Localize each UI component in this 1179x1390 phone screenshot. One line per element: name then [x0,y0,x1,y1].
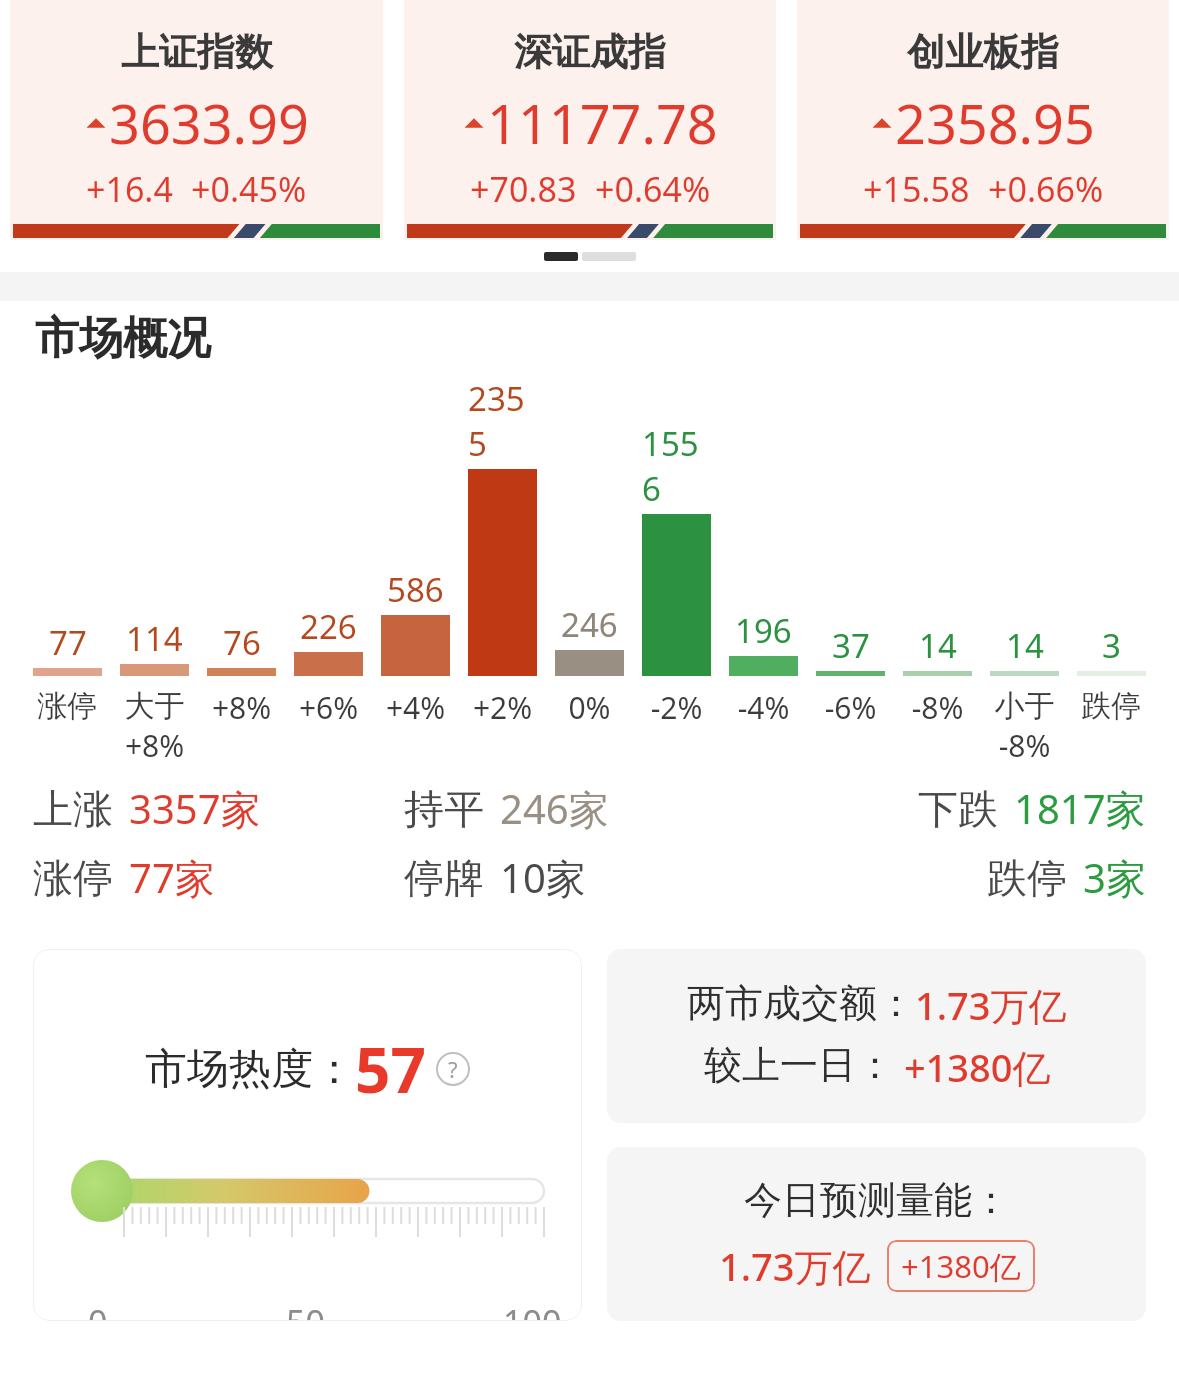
button[interactable]: 3 [1077,376,1146,781]
staticText: +4% [381,687,450,728]
button[interactable]: 上证指数 [10,0,383,240]
button[interactable]: 14 [903,376,972,781]
staticText: 2358.95 [895,86,1095,160]
staticText: +70.83 [470,166,577,212]
staticText: 大于 [120,687,189,725]
staticText: 上证指数 [121,28,273,76]
staticText: 100 [503,1299,562,1321]
staticText: 1556 [642,421,711,511]
button[interactable]: 14 [990,376,1059,781]
staticText: +15.58 [863,166,970,212]
staticText: +8% [120,725,189,766]
staticText: 小于 [990,687,1059,725]
staticText: ? [448,1054,458,1084]
staticText: 涨停 [33,853,113,903]
staticText: 586 [387,567,444,612]
staticText: +0.45% [191,166,307,212]
staticText: 246 [561,602,618,647]
staticText: 停牌 [404,853,484,903]
staticText: 2355 [468,376,537,466]
button[interactable]: 1556 [642,376,711,781]
staticText: +6% [294,687,363,728]
button[interactable]: 两市成交额： [607,949,1146,1123]
staticText: -8% [903,687,972,728]
staticText: 76 [223,620,261,665]
staticText: +16.4 [86,166,173,212]
staticText: -4% [729,687,798,728]
staticText: 3家 [1083,850,1146,905]
button[interactable]: 77 [33,376,102,781]
button[interactable]: 今日预测量能： [607,1147,1146,1321]
button[interactable]: 586 [381,376,450,781]
staticText: -8% [990,725,1059,766]
staticText: 市场热度： [145,1043,355,1096]
staticText: 持平 [404,784,484,834]
staticText: 246家 [500,781,609,836]
staticText: 50 [286,1299,325,1321]
staticText: +0.66% [988,166,1104,212]
staticText: +2% [468,687,537,728]
staticText: 57 [355,1027,426,1111]
staticText: 77 [49,620,87,665]
staticText: 11177.78 [487,86,718,160]
staticText: 市场概况 [35,311,211,366]
staticText: 两市成交额： [687,979,915,1027]
staticText: 14 [1006,623,1044,668]
button[interactable]: 市场热度： [33,949,582,1321]
staticText: 今日预测量能： [744,1176,1010,1224]
staticText: 3 [1102,623,1121,668]
staticText: 跌停 [1077,687,1146,725]
staticText: 0% [555,687,624,728]
button[interactable]: 37 [816,376,885,781]
staticText: 1.73万亿 [915,979,1067,1031]
staticText: 10家 [500,850,586,905]
staticText: 深证成指 [514,28,666,76]
button[interactable]: 76 [207,376,276,781]
staticText: -2% [642,687,711,728]
staticText: 14 [919,623,957,668]
staticText: 196 [735,608,792,653]
staticText: 1817家 [1014,781,1146,836]
staticText: 跌停 [987,853,1067,903]
staticText: 114 [126,616,183,661]
button[interactable]: 帮助说明 [436,1052,470,1086]
staticText: 上涨 [33,784,113,834]
staticText: 较上一日： [704,1041,894,1089]
staticText: 0 [88,1299,108,1321]
button[interactable]: 创业板指 [797,0,1169,240]
staticText: 1.73万亿 [719,1240,871,1292]
staticText: 3357家 [129,781,261,836]
staticText: -6% [816,687,885,728]
staticText: 下跌 [918,784,998,834]
staticText: 77家 [129,850,215,905]
staticText: 创业板指 [907,28,1059,76]
staticText: +1380亿 [901,1245,1021,1287]
button[interactable]: 114 [120,376,189,781]
staticText: 3633.99 [109,86,309,160]
staticText: 涨停 [33,687,102,725]
staticText: 226 [300,604,357,649]
button[interactable]: 深证成指 [404,0,776,240]
staticText: +1380亿 [894,1041,1051,1093]
staticText: +8% [207,687,276,728]
staticText: 37 [832,623,870,668]
button[interactable]: 196 [729,376,798,781]
staticText: +0.64% [595,166,711,212]
button[interactable]: 246 [555,376,624,781]
button[interactable]: 226 [294,376,363,781]
button[interactable]: 2355 [468,376,537,781]
